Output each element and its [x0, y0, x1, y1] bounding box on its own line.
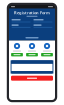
button[interactable]: [12, 25, 30, 28]
button[interactable]: [11, 53, 23, 56]
button[interactable]: [26, 53, 38, 56]
button[interactable]: [9, 76, 55, 81]
button[interactable]: [41, 53, 53, 56]
button[interactable]: [12, 19, 30, 22]
button[interactable]: [25, 41, 39, 57]
button[interactable]: [40, 41, 54, 57]
button[interactable]: [33, 25, 52, 28]
staticText: Registration Form: [14, 10, 50, 15]
button[interactable]: [33, 19, 52, 22]
button[interactable]: [10, 41, 24, 57]
